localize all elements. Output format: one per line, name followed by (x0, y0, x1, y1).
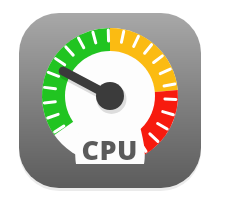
button[interactable]: CPU monitor app icon (0, 0, 225, 200)
